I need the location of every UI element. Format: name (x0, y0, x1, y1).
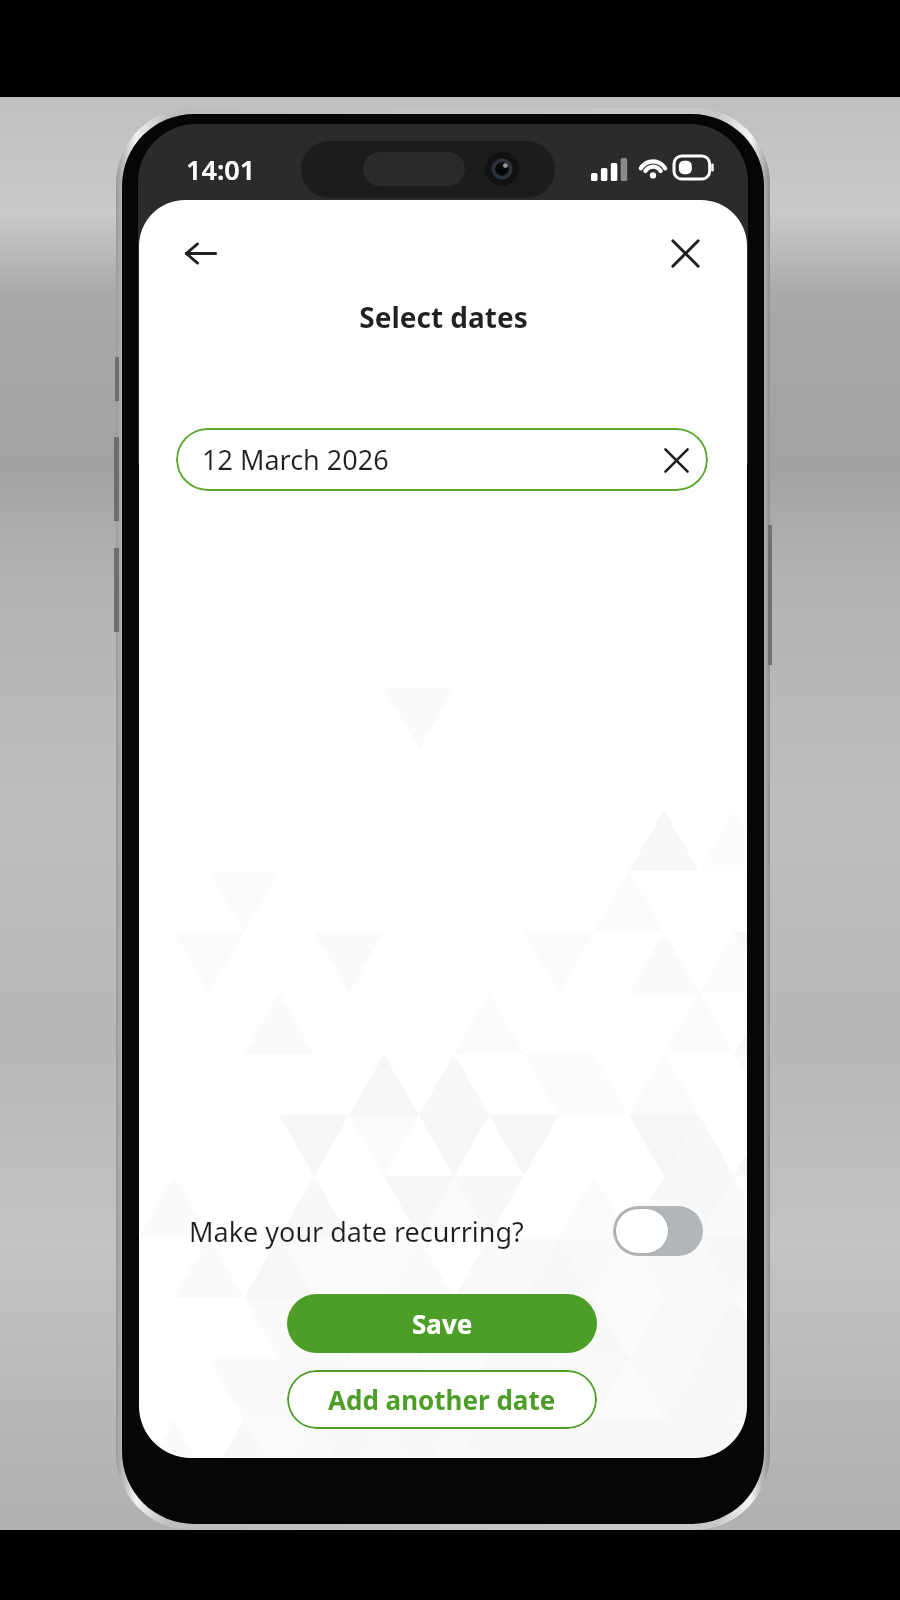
button[interactable]: Make your date recurring? (189, 1206, 703, 1256)
button[interactable]: Add another date (287, 1370, 597, 1429)
staticText: Make your date recurring? (189, 1213, 524, 1250)
button[interactable]: 12 March 2026 (176, 428, 708, 491)
staticText: Save (412, 1306, 473, 1341)
staticText: 14:01 (186, 151, 256, 188)
button[interactable]: Make your date recurring toggle, off (613, 1206, 703, 1256)
button[interactable]: Save (287, 1294, 597, 1353)
staticText: Select dates (359, 298, 528, 336)
button[interactable]: Close (658, 226, 712, 280)
staticText: Add another date (328, 1382, 556, 1417)
staticText: 12 March 2026 (202, 441, 389, 478)
button[interactable]: Clear date (653, 437, 699, 483)
button[interactable]: Back (173, 226, 227, 280)
